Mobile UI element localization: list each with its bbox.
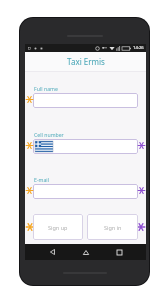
button[interactable] — [33, 139, 138, 154]
staticText: Sign in — [104, 224, 122, 231]
button[interactable]: Sign up — [33, 214, 83, 240]
staticText: Taxi Ermis — [67, 56, 105, 67]
button[interactable]: Sign in — [87, 214, 138, 240]
staticText: Full name — [34, 85, 58, 92]
button[interactable]: Home — [80, 246, 92, 258]
button[interactable] — [33, 184, 138, 199]
staticText: Cell number — [34, 131, 64, 138]
staticText: Sign up — [48, 224, 68, 231]
button[interactable] — [33, 93, 138, 108]
staticText: E-mail — [34, 176, 49, 183]
button[interactable]: Back — [46, 246, 58, 258]
staticText: 14:26 — [133, 45, 144, 51]
button[interactable]: Recent apps — [113, 246, 125, 258]
